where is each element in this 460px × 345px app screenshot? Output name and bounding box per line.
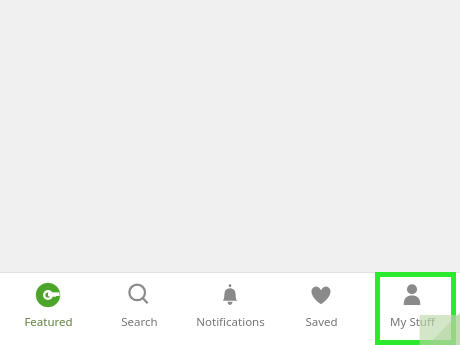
- button[interactable]: Featured: [5, 273, 91, 345]
- other: Saved: [308, 282, 334, 308]
- staticText: Notifications: [196, 314, 265, 330]
- button[interactable]: Search: [96, 273, 182, 345]
- button[interactable]: My Stuff: [369, 273, 455, 345]
- other: Featured: [35, 282, 61, 308]
- other: Search: [126, 282, 152, 308]
- button[interactable]: Notifications: [187, 273, 273, 345]
- staticText: Search: [121, 314, 158, 330]
- other: My Stuff: [399, 282, 425, 308]
- other: Notifications: [217, 282, 243, 308]
- staticText: Saved: [305, 314, 338, 330]
- staticText: Featured: [24, 314, 73, 330]
- staticText: My Stuff: [390, 314, 435, 330]
- button[interactable]: Saved: [278, 273, 364, 345]
